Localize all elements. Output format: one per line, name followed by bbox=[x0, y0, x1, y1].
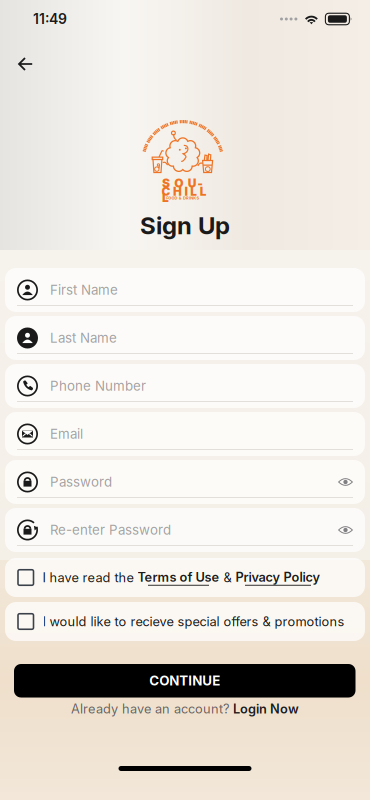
staticText: First Name bbox=[50, 282, 118, 298]
button[interactable]: Already have an account? bbox=[0, 699, 370, 718]
staticText: I have read the bbox=[42, 570, 137, 585]
staticText: Sign Up bbox=[140, 211, 230, 240]
staticText: Email bbox=[50, 426, 83, 442]
staticText: CONTINUE bbox=[149, 673, 220, 689]
button[interactable]: Password bbox=[5, 460, 365, 504]
staticText: Phone Number bbox=[50, 378, 146, 394]
button[interactable]: Phone Number bbox=[5, 364, 365, 408]
staticText: Re-enter Password bbox=[50, 522, 171, 538]
button[interactable]: Last Name bbox=[5, 316, 365, 360]
staticText: & bbox=[219, 570, 235, 585]
button[interactable]: CONTINUE bbox=[14, 664, 355, 697]
button[interactable]: I have read the bbox=[5, 558, 365, 597]
staticText: CHILL bbox=[161, 184, 207, 198]
staticText: 11:49 bbox=[33, 10, 67, 27]
staticText: I would like to recieve special offers &… bbox=[42, 614, 344, 629]
button[interactable]: Re-enter Password bbox=[5, 508, 365, 552]
staticText: SOUL bbox=[162, 176, 208, 190]
button[interactable]: Back bbox=[0, 47, 47, 81]
staticText: FOOD & DRINKS bbox=[166, 196, 199, 200]
staticText: Already have an account? bbox=[71, 701, 230, 716]
staticText: Login Now bbox=[233, 701, 299, 716]
button[interactable]: I would like to recieve special offers &… bbox=[5, 602, 365, 641]
staticText: Last Name bbox=[50, 330, 117, 346]
staticText: Password bbox=[50, 474, 112, 490]
button[interactable]: Email bbox=[5, 412, 365, 456]
staticText: Privacy Policy bbox=[235, 569, 320, 585]
button[interactable]: First Name bbox=[5, 268, 365, 312]
staticText: Terms of Use bbox=[137, 569, 219, 585]
